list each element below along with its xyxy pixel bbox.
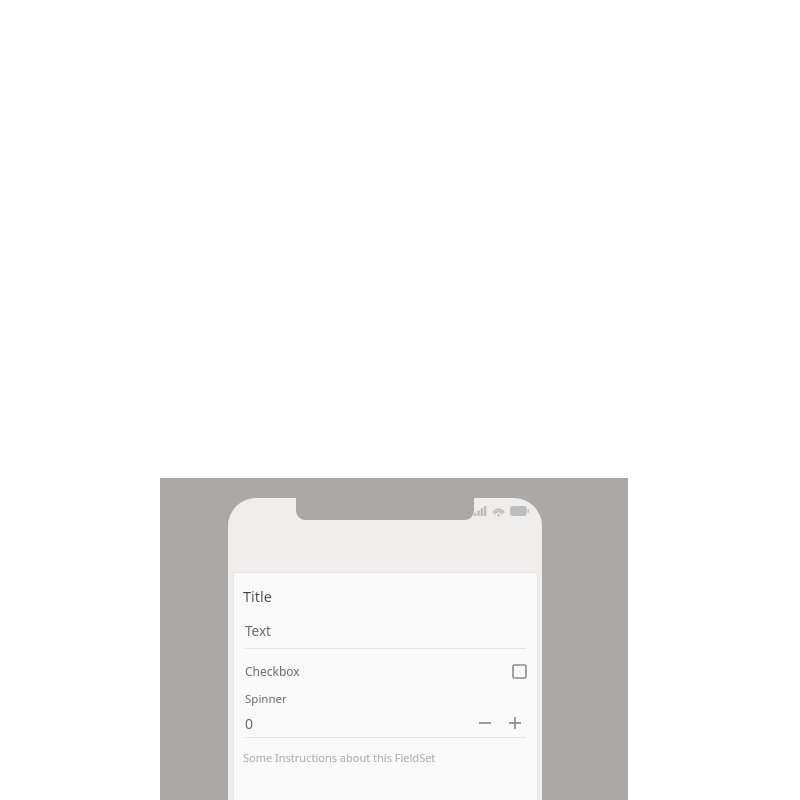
staticText: 0	[245, 714, 254, 733]
staticText: Text	[245, 622, 271, 640]
other: Checkbox	[513, 665, 526, 678]
button[interactable]: Checkbox	[245, 659, 526, 683]
button[interactable]: Decrement	[474, 712, 496, 734]
button[interactable]: Text	[245, 622, 526, 649]
staticText: Checkbox	[245, 663, 300, 679]
button[interactable]: Increment	[504, 712, 526, 734]
staticText: Spinner	[245, 691, 287, 707]
staticText: Some Instructions about this FieldSet	[243, 750, 436, 765]
staticText: Title	[243, 586, 272, 606]
